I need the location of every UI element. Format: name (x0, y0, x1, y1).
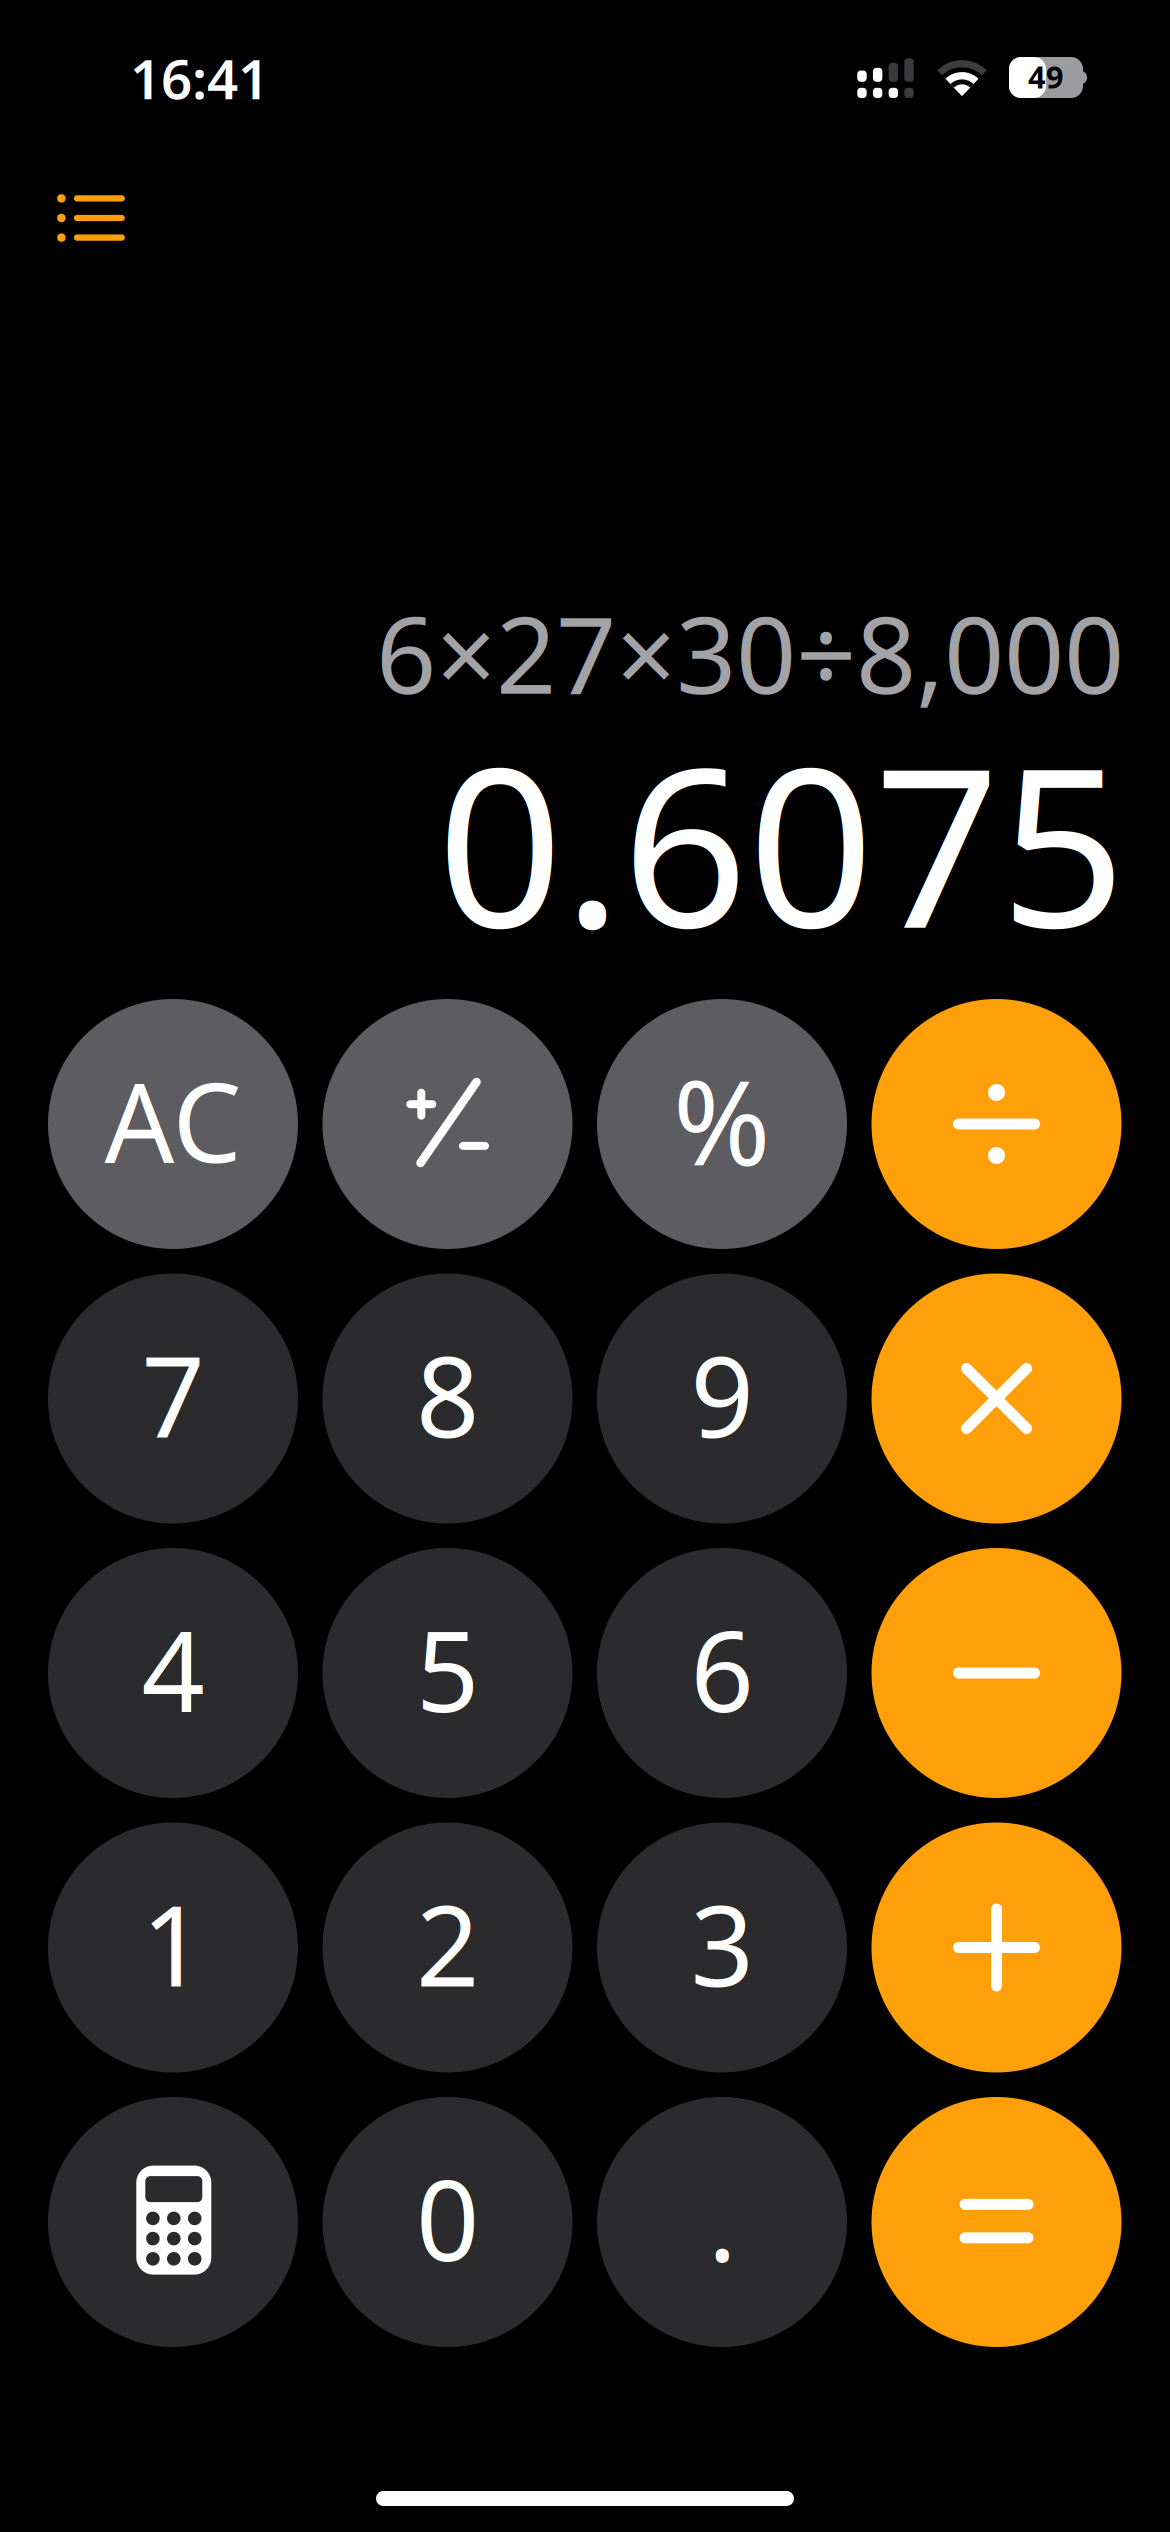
button[interactable]: 8 (322, 1273, 572, 1523)
button[interactable]: Divide (871, 999, 1121, 1249)
button[interactable]: Subtract (871, 1548, 1121, 1798)
staticText: 8 (416, 1321, 479, 1468)
button[interactable]: Add (871, 1822, 1121, 2072)
staticText: 6×27×30÷8,000 (376, 583, 1124, 723)
staticText: 3 (690, 1870, 753, 2017)
staticText: 49 (1028, 56, 1064, 97)
staticText: 0.6075 (437, 696, 1126, 988)
button[interactable]: 4 (48, 1548, 298, 1798)
staticText: 6 (690, 1595, 753, 1742)
button[interactable]: History (26, 158, 156, 278)
button[interactable]: 6 (597, 1548, 847, 1798)
button[interactable]: 2 (322, 1822, 572, 2072)
button[interactable]: Decimal point (597, 2097, 847, 2347)
button[interactable]: 0 (322, 2097, 572, 2347)
staticText: 5 (416, 1595, 479, 1742)
staticText: 2 (416, 1870, 479, 2017)
staticText: 7 (141, 1321, 204, 1468)
staticText: 16:41 (130, 42, 269, 114)
staticText: % (673, 1042, 771, 1198)
button[interactable]: Multiply (871, 1273, 1121, 1523)
staticText: AC (104, 1047, 241, 1193)
button[interactable]: 5 (322, 1548, 572, 1798)
staticText: 1 (141, 1870, 204, 2017)
button[interactable]: 3 (597, 1822, 847, 2072)
button[interactable]: Percent (597, 999, 847, 1249)
button[interactable]: 1 (48, 1822, 298, 2072)
staticText: 4 (141, 1595, 204, 1742)
button[interactable]: Equals (871, 2097, 1121, 2347)
button[interactable]: Calculator mode (48, 2097, 298, 2347)
button[interactable]: All clear (48, 999, 298, 1249)
staticText: 0 (416, 2144, 479, 2291)
staticText: . (708, 2150, 737, 2291)
button[interactable]: 9 (597, 1273, 847, 1523)
button[interactable]: Plus minus (322, 999, 572, 1249)
button[interactable]: 7 (48, 1273, 298, 1523)
staticText: 9 (690, 1321, 753, 1468)
